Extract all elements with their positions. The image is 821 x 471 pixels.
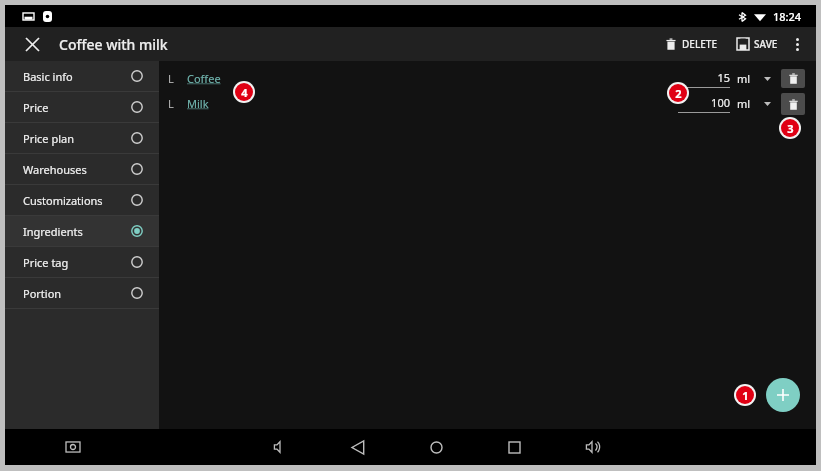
button[interactable]: Delete Coffee (781, 69, 805, 88)
button[interactable]: Back (343, 432, 373, 462)
button[interactable]: 15 (678, 70, 730, 88)
staticText: Coffee (187, 71, 221, 86)
staticText: 2 (675, 86, 682, 101)
button[interactable]: Price (5, 92, 159, 122)
button[interactable]: Price tag (5, 247, 159, 277)
staticText: SAVE (754, 37, 778, 51)
staticText: 15 (717, 70, 730, 85)
button[interactable]: Milk (187, 96, 209, 111)
button[interactable]: Basic info (5, 61, 159, 91)
staticText: DELETE (682, 37, 717, 51)
staticText: 3 (787, 121, 794, 136)
button[interactable]: Price plan (5, 123, 159, 153)
staticText: Coffee with milk (59, 35, 168, 54)
button[interactable]: Coffee (187, 71, 221, 86)
staticText: L (168, 71, 174, 86)
button[interactable]: Select unit (760, 97, 774, 111)
staticText: Price (23, 100, 49, 115)
button[interactable]: Delete Milk (781, 93, 805, 115)
button[interactable]: Portion (5, 278, 159, 308)
button[interactable]: More options (784, 31, 810, 57)
staticText: Warehouses (23, 162, 87, 177)
button[interactable]: Screenshot (60, 434, 86, 460)
staticText: 1 (742, 388, 749, 403)
button[interactable]: Ingredients (5, 216, 159, 246)
staticText: Price plan (23, 131, 74, 146)
button[interactable]: Home (421, 432, 451, 462)
staticText: Ingredients (23, 224, 83, 239)
staticText: ml (737, 71, 751, 86)
staticText: Portion (23, 286, 62, 301)
button[interactable]: Warehouses (5, 154, 159, 184)
staticText: 18:24 (773, 9, 802, 24)
button[interactable]: Volume up (577, 432, 607, 462)
staticText: ml (737, 96, 751, 111)
staticText: Price tag (23, 255, 69, 270)
button[interactable]: 100 (678, 95, 730, 113)
button[interactable]: Volume down (265, 432, 295, 462)
staticText: Customizations (23, 193, 103, 208)
button[interactable]: Close (15, 27, 49, 61)
staticText: Milk (187, 96, 209, 111)
button[interactable]: DELETE (659, 31, 723, 57)
button[interactable]: Select unit (760, 72, 774, 86)
staticText: L (168, 96, 174, 111)
button[interactable]: Customizations (5, 185, 159, 215)
button[interactable]: Add ingredient (766, 378, 800, 412)
staticText: 100 (711, 95, 730, 110)
staticText: Basic info (23, 69, 73, 84)
button[interactable]: Recent apps (499, 432, 529, 462)
staticText: 4 (241, 85, 248, 100)
button[interactable]: SAVE (731, 31, 784, 57)
